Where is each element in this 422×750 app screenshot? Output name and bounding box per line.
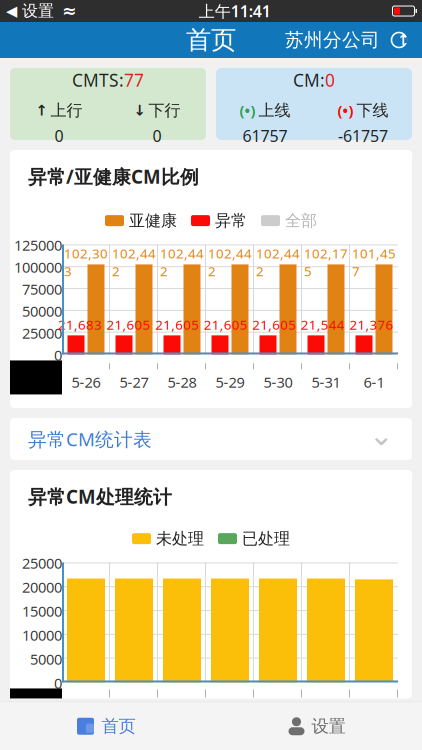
staticText: 21,544 [301,316,345,333]
staticText: 6-1 [363,372,384,392]
staticText: 异常CM统计表 [28,427,152,451]
button[interactable]: 首页 [0,702,211,750]
staticText: 0 [54,673,62,693]
staticText: 设置 [22,1,54,21]
staticText: ↓ [133,102,145,119]
staticText: 125000 [14,235,62,255]
staticText: 21,605 [155,316,199,333]
staticText: ⌄ [369,418,394,452]
staticText: 102,303 [64,244,108,280]
staticText: 102,442 [112,244,156,280]
staticText: 101,457 [352,244,396,280]
staticText: 21,683 [58,316,102,333]
staticText: 61757 [242,125,287,146]
button[interactable]: 设置 [211,702,422,750]
staticText: 首页 [101,716,135,737]
staticText: 20000 [22,577,62,597]
staticText: 上线 [258,101,290,120]
staticText: ≈ [62,1,77,21]
staticText: 21,376 [349,316,393,333]
staticText: 5-30 [263,372,292,392]
staticText: 0 [152,125,161,146]
staticText: 0 [54,125,63,146]
staticText: 苏州分公司 [285,28,380,51]
staticText: 50000 [22,301,62,321]
staticText: 21,605 [252,316,296,333]
staticText: -61757 [338,125,388,146]
staticText: 上行 [50,101,82,120]
staticText: 上午11:41 [199,0,271,22]
staticText: 21,605 [107,316,151,333]
staticText: ↑ [35,102,47,119]
button[interactable]: 刷新 [384,25,414,55]
staticText: 0 [325,68,335,91]
staticText: ◀ [6,3,17,19]
staticText: 首页 [186,24,236,55]
staticText: 102,442 [160,244,204,280]
staticText: 设置 [311,716,345,737]
staticText: CMTS: [72,68,124,91]
button[interactable]: 异常CM统计表 [10,418,412,460]
staticText: 0 [54,345,62,365]
staticText: 5-28 [167,372,196,392]
staticText: 5-27 [119,372,148,392]
staticText: 10000 [22,625,62,645]
staticText: 25000 [22,323,62,343]
staticText: 100000 [14,257,62,277]
staticText: 5-26 [71,372,100,392]
staticText: 异常/亚健康CM比例 [28,164,199,189]
staticText: 全部 [285,211,317,230]
staticText: 102,442 [256,244,300,280]
staticText: 77 [124,68,144,91]
staticText: 102,175 [304,244,348,280]
staticText: 15000 [22,601,62,621]
staticText: 102,442 [208,244,252,280]
staticText: 已处理 [242,529,290,548]
button[interactable]: 苏州分公司 [281,20,384,59]
staticText: 下线 [356,101,388,120]
staticText: 21,605 [204,316,248,333]
staticText: 未处理 [156,529,204,548]
staticText: 5000 [30,649,62,669]
staticText: 异常CM处理统计 [28,484,172,509]
staticText: CM: [293,68,325,91]
staticText: 下行 [148,101,180,120]
staticText: 5-29 [215,372,244,392]
staticText: (•) [239,101,255,120]
staticText: 异常 [215,211,247,230]
staticText: (•) [337,101,353,120]
staticText: ↑ [397,32,409,48]
staticText: 25000 [22,553,62,573]
staticText: 75000 [22,279,62,299]
staticText: 亚健康 [129,211,177,230]
staticText: 5-31 [311,372,340,392]
